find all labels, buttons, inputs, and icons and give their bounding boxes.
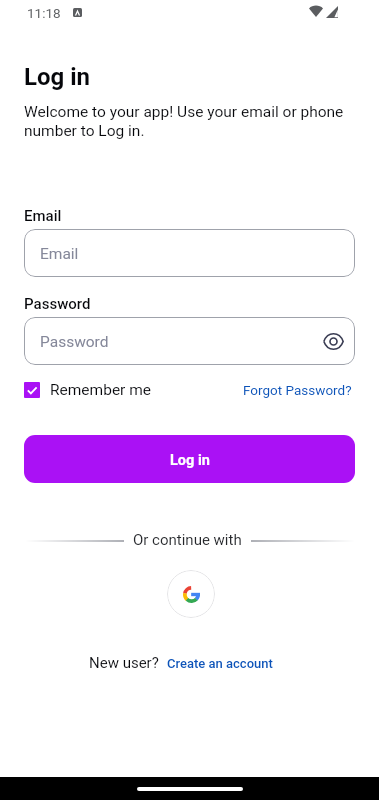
staticText: Forgot Password?	[243, 382, 352, 398]
staticText: Remember me	[50, 381, 152, 399]
button[interactable]: Forgot Password?	[243, 382, 352, 398]
staticText: Email	[24, 207, 62, 225]
staticText: Log in	[24, 63, 91, 91]
staticText: New user?	[89, 654, 159, 672]
staticText: Email	[40, 245, 79, 263]
button[interactable]: Log in	[24, 435, 355, 483]
button[interactable]: Remember me	[24, 381, 152, 399]
button[interactable]: Create an account	[167, 656, 273, 671]
button[interactable]: Show password	[322, 330, 345, 353]
staticText: Password	[24, 295, 91, 313]
staticText: Log in	[170, 452, 210, 469]
staticText: Create an account	[167, 656, 273, 671]
staticText: Welcome to your app! Use your email or p…	[24, 103, 350, 140]
staticText: Password	[40, 333, 109, 351]
staticText: 11:18	[27, 5, 61, 21]
button[interactable]: Email	[24, 229, 355, 277]
staticText: Or continue with	[133, 531, 242, 549]
button[interactable]: Continue with Google	[167, 570, 215, 618]
button[interactable]: Password	[24, 317, 355, 365]
